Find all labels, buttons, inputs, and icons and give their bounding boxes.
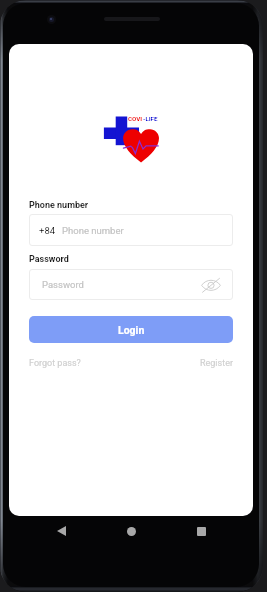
button[interactable]: Home: [115, 516, 147, 546]
staticText: Forgot pass?: [29, 358, 81, 369]
button[interactable]: Recents: [185, 516, 217, 546]
button[interactable]: +84: [29, 214, 233, 246]
button[interactable]: Login: [29, 316, 233, 343]
staticText: +84: [39, 225, 56, 236]
staticText: -LIFE: [143, 115, 158, 122]
staticText: Password: [29, 254, 69, 265]
button[interactable]: Show password: [201, 277, 221, 293]
staticText: Login: [118, 324, 145, 336]
staticText: Phone number: [29, 200, 89, 211]
staticText: Phone number: [62, 225, 124, 236]
button[interactable]: Back: [45, 516, 77, 546]
button[interactable]: Register: [200, 358, 233, 369]
button[interactable]: Password: [29, 269, 233, 300]
staticText: Password: [42, 279, 84, 290]
staticText: Register: [200, 358, 233, 369]
button[interactable]: Forgot pass?: [29, 358, 81, 369]
staticText: COVI: [128, 115, 143, 122]
